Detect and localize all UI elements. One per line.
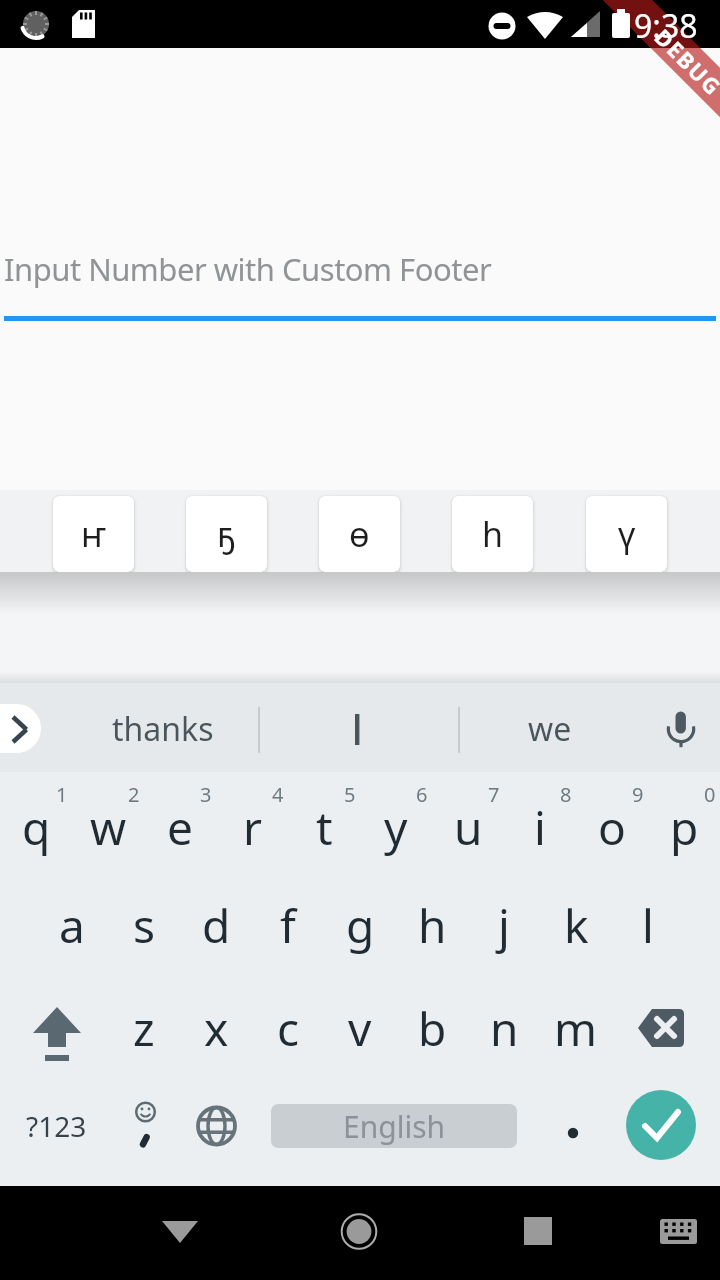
- staticText: o: [598, 796, 626, 859]
- staticText: j: [498, 894, 510, 957]
- button[interactable]: we: [470, 699, 630, 759]
- button[interactable]: o: [576, 779, 648, 875]
- button[interactable]: n: [468, 978, 540, 1078]
- staticText: s: [133, 894, 156, 957]
- button[interactable]: f: [252, 875, 324, 975]
- staticText: m: [554, 997, 598, 1060]
- staticText: we: [528, 707, 572, 751]
- staticText: ?123: [26, 1107, 87, 1145]
- button[interactable]: English: [271, 1104, 517, 1148]
- button[interactable]: k: [540, 875, 612, 975]
- staticText: 4: [272, 781, 284, 808]
- button[interactable]: u: [432, 779, 504, 875]
- button[interactable]: r: [216, 779, 288, 875]
- button[interactable]: ?123: [2, 1076, 110, 1176]
- button[interactable]: q: [0, 779, 72, 875]
- staticText: 0: [704, 781, 716, 808]
- button[interactable]: p: [648, 779, 720, 875]
- button[interactable]: ҥ: [53, 496, 134, 572]
- staticText: 7: [488, 781, 500, 808]
- staticText: 9:38: [634, 4, 698, 44]
- staticText: q: [22, 796, 51, 859]
- staticText: 3: [200, 781, 212, 808]
- staticText: i: [534, 796, 546, 859]
- button[interactable]: [267, 699, 447, 759]
- staticText: 5: [344, 781, 356, 808]
- button[interactable]: ү: [586, 496, 667, 572]
- staticText: u: [454, 796, 483, 859]
- staticText: r: [243, 796, 262, 859]
- staticText: ө: [349, 511, 370, 557]
- button[interactable]: w: [72, 779, 144, 875]
- button[interactable]: t: [288, 779, 360, 875]
- button[interactable]: x: [180, 978, 252, 1078]
- button[interactable]: m: [540, 978, 612, 1078]
- button[interactable]: [650, 695, 714, 761]
- button[interactable]: thanks: [63, 699, 263, 759]
- button[interactable]: [536, 1080, 612, 1172]
- button[interactable]: [626, 1090, 696, 1160]
- staticText: x: [204, 997, 229, 1060]
- staticText: k: [564, 894, 589, 957]
- button[interactable]: [108, 1076, 180, 1176]
- staticText: 1: [56, 781, 68, 808]
- button[interactable]: y: [360, 779, 432, 875]
- staticText: ү: [618, 511, 636, 557]
- staticText: 9: [632, 781, 644, 808]
- staticText: g: [346, 894, 375, 957]
- staticText: w: [90, 796, 127, 859]
- button[interactable]: [144, 1196, 216, 1268]
- button[interactable]: c: [252, 978, 324, 1078]
- button[interactable]: [0, 704, 41, 753]
- button[interactable]: s: [108, 875, 180, 975]
- staticText: English: [343, 1106, 446, 1147]
- staticText: y: [384, 796, 408, 859]
- button[interactable]: [0, 978, 108, 1078]
- button[interactable]: d: [180, 875, 252, 975]
- staticText: t: [316, 796, 333, 859]
- staticText: h: [482, 511, 504, 557]
- staticText: thanks: [112, 707, 214, 751]
- staticText: Input Number with Custom Footer: [4, 248, 492, 290]
- button[interactable]: ө: [319, 496, 400, 572]
- button[interactable]: g: [324, 875, 396, 975]
- staticText: v: [348, 997, 372, 1060]
- staticText: h: [418, 894, 447, 957]
- staticText: z: [133, 997, 155, 1060]
- button[interactable]: [612, 978, 720, 1078]
- button[interactable]: e: [144, 779, 216, 875]
- staticText: 2: [128, 781, 140, 808]
- staticText: p: [670, 796, 699, 859]
- button[interactable]: h: [452, 496, 533, 572]
- button[interactable]: v: [324, 978, 396, 1078]
- staticText: f: [280, 894, 296, 957]
- button[interactable]: [0, 240, 720, 320]
- staticText: a: [59, 894, 85, 957]
- button[interactable]: l: [612, 875, 684, 975]
- staticText: n: [490, 997, 519, 1060]
- button[interactable]: b: [396, 978, 468, 1078]
- button[interactable]: j: [468, 875, 540, 975]
- staticText: c: [277, 997, 300, 1060]
- staticText: 6: [416, 781, 428, 808]
- staticText: e: [167, 796, 193, 859]
- button[interactable]: a: [36, 875, 108, 975]
- staticText: DEBUG: [648, 22, 720, 102]
- staticText: 8: [560, 781, 572, 808]
- button[interactable]: i: [504, 779, 576, 875]
- button[interactable]: [322, 1196, 394, 1268]
- staticText: ҕ: [217, 511, 236, 557]
- button[interactable]: h: [396, 875, 468, 975]
- button[interactable]: ҕ: [186, 496, 267, 572]
- staticText: b: [418, 997, 447, 1060]
- staticText: d: [202, 894, 231, 957]
- button[interactable]: z: [108, 978, 180, 1078]
- button[interactable]: [502, 1196, 574, 1268]
- button[interactable]: [642, 1196, 714, 1268]
- staticText: l: [642, 894, 654, 957]
- button[interactable]: [180, 1076, 252, 1176]
- staticText: ҥ: [81, 511, 107, 557]
